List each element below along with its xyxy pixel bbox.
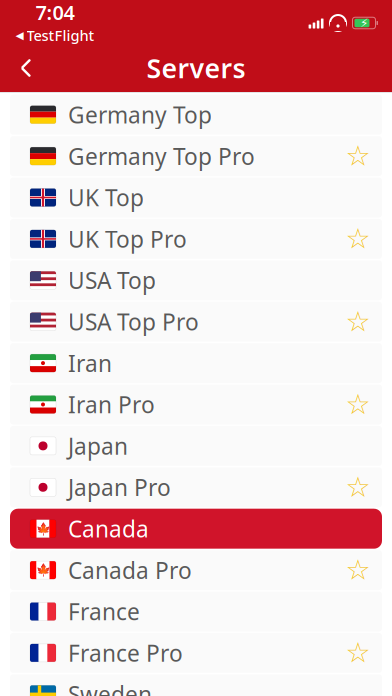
button[interactable]: Germany Top <box>0 94 392 135</box>
staticText: TestFlight <box>26 25 94 45</box>
staticText: Servers <box>146 50 245 86</box>
staticText: France <box>68 596 140 626</box>
staticText: ☆ <box>345 223 370 255</box>
staticText: USA Top Pro <box>68 307 199 337</box>
staticText: ◀ <box>15 29 23 41</box>
button[interactable]: UK Top <box>0 177 392 218</box>
staticText: Sweden <box>68 679 152 696</box>
staticText: Canada Pro <box>68 555 192 585</box>
staticText: ⚡︎ <box>360 16 368 30</box>
staticText: ☆ <box>345 306 370 338</box>
button[interactable]: UK Top Pro <box>0 218 392 260</box>
staticText: 7:04 <box>35 0 74 26</box>
staticText: USA Top <box>68 265 156 295</box>
button[interactable]: USA Top <box>0 260 392 301</box>
staticText: UK Top <box>68 182 144 212</box>
staticText: ☆ <box>345 554 370 586</box>
staticText: France Pro <box>68 638 183 668</box>
staticText: Germany Top <box>68 100 212 130</box>
staticText: ☆ <box>345 637 370 669</box>
staticText: ☆ <box>345 471 370 503</box>
staticText: ☆ <box>345 140 370 172</box>
staticText: Canada <box>68 514 149 544</box>
staticText: Iran Pro <box>68 389 155 419</box>
button[interactable]: USA Top Pro <box>0 301 392 342</box>
button[interactable]: Japan Pro <box>0 467 392 508</box>
staticText: 🍁 <box>35 563 50 577</box>
button[interactable]: Iran Pro <box>0 384 392 425</box>
staticText: UK Top Pro <box>68 224 187 254</box>
button[interactable]: Back <box>0 44 52 92</box>
staticText: Japan <box>68 431 128 461</box>
button[interactable]: Germany Top Pro <box>0 135 392 177</box>
button[interactable]: France Pro <box>0 632 392 674</box>
staticText: Japan Pro <box>68 472 171 502</box>
staticText: Germany Top Pro <box>68 141 255 171</box>
button[interactable]: Sweden <box>0 674 392 696</box>
button[interactable]: France <box>0 591 392 632</box>
button[interactable]: 🍁 <box>0 549 392 591</box>
button[interactable]: Japan <box>0 425 392 467</box>
staticText: 🍁 <box>35 522 50 535</box>
staticText: Iran <box>68 348 112 378</box>
button[interactable]: 🍁 <box>0 508 392 549</box>
staticText: ☆ <box>345 389 370 420</box>
button[interactable]: Iran <box>0 342 392 384</box>
